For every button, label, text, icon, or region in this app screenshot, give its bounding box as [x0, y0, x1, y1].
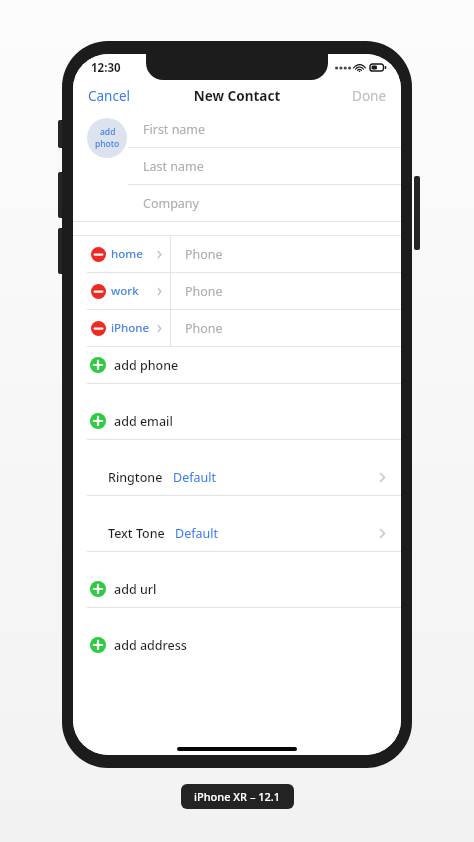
staticText: iPhone	[111, 320, 150, 336]
staticText: Text Tone	[108, 525, 165, 542]
button[interactable]: Remove home	[73, 236, 401, 272]
button[interactable]: Remove iPhone	[73, 310, 401, 346]
staticText: photo	[95, 138, 120, 150]
button[interactable]: Company	[128, 185, 401, 221]
button[interactable]: Text Tone	[73, 515, 401, 551]
button[interactable]: Remove iPhone	[87, 317, 109, 339]
staticText: Cancel	[88, 87, 401, 105]
staticText: Default	[175, 525, 218, 542]
button[interactable]: add phone	[73, 347, 401, 383]
staticText: Phone	[185, 283, 223, 300]
staticText: Phone	[185, 246, 223, 263]
staticText: add	[100, 126, 116, 138]
button[interactable]: Remove work	[87, 280, 109, 302]
button[interactable]: add	[87, 118, 127, 158]
staticText: Default	[173, 469, 216, 486]
staticText: Company	[143, 195, 199, 212]
staticText: add url	[114, 581, 157, 598]
staticText: Done	[73, 87, 386, 105]
button[interactable]: First name	[128, 111, 401, 147]
staticText: Phone	[185, 320, 223, 337]
staticText: First name	[143, 121, 206, 138]
staticText: home	[111, 246, 143, 262]
staticText: 12:30	[91, 60, 121, 76]
staticText: add email	[114, 413, 173, 430]
button[interactable]: add address	[73, 627, 401, 663]
button[interactable]: add email	[73, 403, 401, 439]
staticText: iPhone XR – 12.1	[194, 789, 281, 804]
button[interactable]: Remove home	[87, 243, 109, 265]
button[interactable]: Ringtone	[73, 459, 401, 495]
button[interactable]: Last name	[128, 148, 401, 184]
staticText: add phone	[114, 357, 179, 374]
staticText: New Contact	[73, 87, 401, 105]
button[interactable]: add url	[73, 571, 401, 607]
staticText: work	[111, 283, 139, 299]
staticText: Last name	[143, 158, 204, 175]
staticText: Ringtone	[108, 469, 163, 486]
staticText: add address	[114, 637, 187, 654]
button[interactable]: Remove work	[73, 273, 401, 309]
